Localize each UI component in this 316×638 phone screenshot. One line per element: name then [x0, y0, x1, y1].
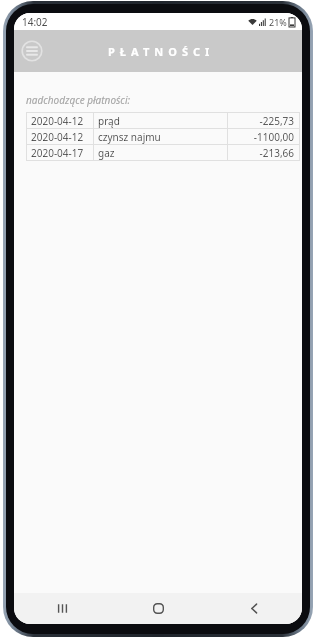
- staticText: -213,66: [228, 146, 294, 160]
- staticText: gaz: [98, 146, 227, 160]
- staticText: prąd: [98, 114, 227, 128]
- staticText: 2020-04-12: [31, 130, 93, 144]
- staticText: 2020-04-17: [31, 146, 93, 160]
- button[interactable]: 2020-04-17: [26, 145, 300, 160]
- staticText: nadchodzące płatności:: [26, 93, 131, 107]
- staticText: 14:02: [22, 15, 48, 29]
- staticText: PŁATNOŚCI: [108, 44, 215, 59]
- staticText: 21%: [269, 16, 287, 28]
- staticText: 2020-04-12: [31, 114, 93, 128]
- button[interactable]: Menu: [19, 38, 45, 64]
- staticText: -225,73: [228, 114, 294, 128]
- button[interactable]: Home: [110, 593, 206, 624]
- button[interactable]: Back: [206, 593, 302, 624]
- button[interactable]: Recent apps: [14, 593, 110, 624]
- staticText: czynsz najmu: [98, 130, 227, 144]
- staticText: -1100,00: [228, 130, 294, 144]
- button[interactable]: 2020-04-12: [26, 129, 300, 144]
- button[interactable]: 2020-04-12: [26, 113, 300, 128]
